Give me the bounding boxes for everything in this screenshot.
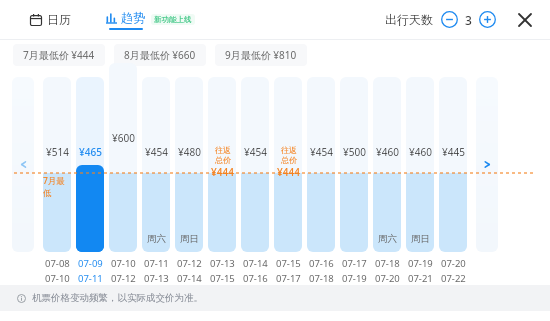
staticText: 07-08: [45, 257, 70, 270]
staticText: 07-16: [243, 272, 268, 285]
button[interactable]: ¥514: [43, 69, 71, 283]
staticText: 周六: [147, 233, 166, 245]
staticText: ¥514: [46, 145, 69, 159]
button[interactable]: 趋势: [106, 10, 145, 30]
staticText: ¥445: [442, 145, 465, 159]
staticText: 07-20: [441, 257, 466, 270]
staticText: ¥454: [145, 145, 168, 159]
staticText: 07-19: [408, 257, 433, 270]
staticText: 往返: [215, 145, 231, 155]
button[interactable]: Close: [514, 9, 536, 31]
button[interactable]: ¥454: [142, 69, 170, 283]
staticText: 趋势: [121, 10, 145, 25]
button[interactable]: 日历: [28, 8, 73, 31]
staticText: 出行天数: [385, 12, 433, 27]
button[interactable]: 往返: [208, 69, 236, 283]
button[interactable]: 7月最低价 ¥444: [13, 44, 105, 66]
staticText: ¥460: [409, 145, 432, 159]
staticText: 07-10: [45, 272, 70, 285]
staticText: 日历: [47, 12, 71, 27]
staticText: 周六: [378, 233, 397, 245]
button[interactable]: ¥460: [373, 69, 401, 283]
staticText: 07-19: [342, 272, 367, 285]
button[interactable]: ¥600: [109, 69, 137, 283]
button[interactable]: Increase days: [479, 11, 496, 28]
staticText: ¥600: [112, 131, 135, 145]
staticText: 07-17: [342, 257, 367, 270]
button[interactable]: ¥454: [307, 69, 335, 283]
staticText: 07-10: [111, 257, 136, 270]
staticText: 07-18: [375, 257, 400, 270]
button[interactable]: ¥500: [340, 69, 368, 283]
staticText: 07-16: [309, 257, 334, 270]
staticText: 07-22: [441, 272, 466, 285]
button[interactable]: ¥480: [175, 69, 203, 283]
staticText: 07-12: [111, 272, 136, 285]
staticText: 总价: [215, 155, 231, 165]
staticText: 8月最低价 ¥660: [124, 48, 196, 62]
staticText: 机票价格变动频繁，以实际成交价为准。: [32, 292, 203, 304]
button[interactable]: Next dates: [476, 77, 498, 252]
button[interactable]: ¥445: [439, 69, 467, 283]
button[interactable]: 往返: [274, 69, 302, 283]
staticText: ¥460: [376, 145, 399, 159]
staticText: ¥444: [277, 165, 300, 179]
button[interactable]: ¥460: [406, 69, 434, 283]
staticText: ¥480: [178, 145, 201, 159]
staticText: 7月最低: [43, 175, 71, 198]
staticText: 07-14: [177, 272, 202, 285]
staticText: ¥500: [343, 145, 366, 159]
staticText: 07-17: [276, 272, 301, 285]
staticText: 07-13: [144, 272, 169, 285]
staticText: 9月最低价 ¥810: [225, 48, 297, 62]
staticText: 07-14: [243, 257, 268, 270]
staticText: 07-13: [210, 257, 235, 270]
button[interactable]: Decrease days: [441, 11, 458, 28]
staticText: 07-11: [78, 272, 103, 285]
button[interactable]: Previous dates: [12, 77, 34, 252]
staticText: 07-15: [276, 257, 301, 270]
staticText: 7月最低价 ¥444: [23, 48, 95, 62]
button[interactable]: 8月最低价 ¥660: [114, 44, 206, 66]
staticText: 07-09: [78, 257, 103, 270]
staticText: 07-15: [210, 272, 235, 285]
staticText: 3: [465, 12, 472, 28]
staticText: ¥444: [211, 165, 234, 179]
staticText: 07-21: [408, 272, 433, 285]
staticText: 07-12: [177, 257, 202, 270]
button[interactable]: ¥454: [241, 69, 269, 283]
button[interactable]: ¥465: [76, 69, 104, 283]
staticText: 07-20: [375, 272, 400, 285]
staticText: 往返: [281, 145, 297, 155]
staticText: ¥465: [79, 145, 102, 159]
staticText: 07-11: [144, 257, 169, 270]
staticText: 总价: [281, 155, 297, 165]
button[interactable]: 9月最低价 ¥810: [215, 44, 307, 66]
staticText: 新功能上线: [154, 15, 192, 24]
staticText: 周日: [411, 233, 430, 245]
staticText: ¥454: [244, 145, 267, 159]
staticText: 周日: [180, 233, 199, 245]
staticText: ¥454: [310, 145, 333, 159]
staticText: 07-18: [309, 272, 334, 285]
